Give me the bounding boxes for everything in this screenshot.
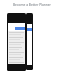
staticText: Become a Better Planner <box>13 3 51 7</box>
